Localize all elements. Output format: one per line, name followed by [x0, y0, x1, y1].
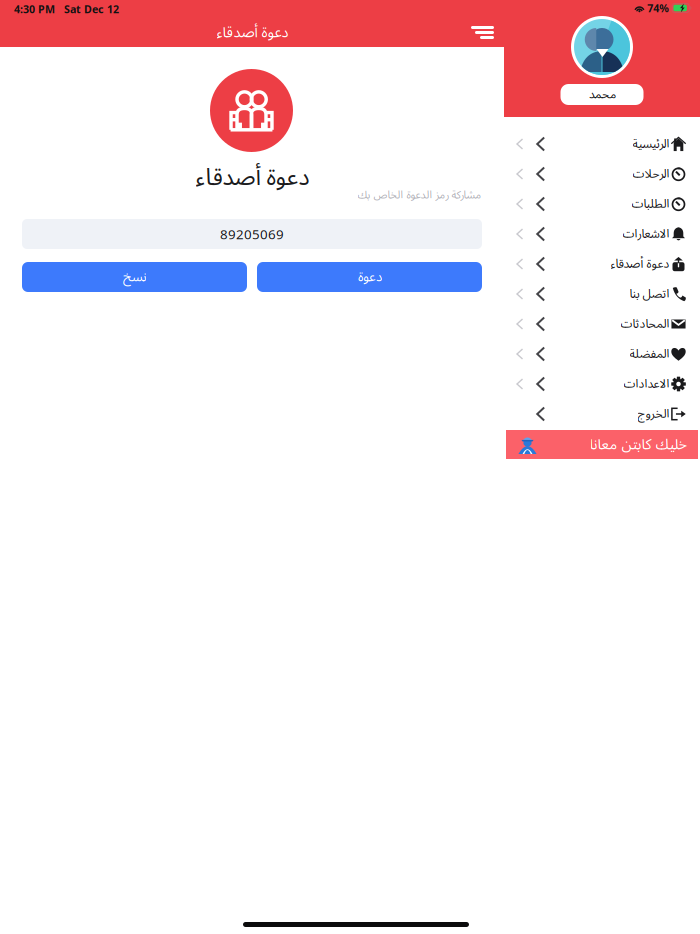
staticText: دعوة أصدقاء — [610, 251, 669, 277]
staticText: الاشعارات — [622, 221, 669, 247]
button[interactable]: الرئيسية — [504, 129, 700, 159]
staticText: دعوة — [357, 263, 381, 291]
staticText: المحادثات — [620, 311, 669, 337]
staticText: الاعدادات — [623, 371, 669, 397]
staticText: الرئيسية — [632, 131, 669, 157]
staticText: نسخ — [122, 263, 146, 291]
staticText: اتصل بنا — [629, 281, 669, 307]
staticText: الخروج — [637, 401, 669, 427]
button[interactable]: نسخ — [22, 262, 247, 292]
staticText: محمد — [588, 82, 615, 107]
button[interactable]: الرحلات — [504, 159, 700, 189]
button[interactable]: المحادثات — [504, 309, 700, 339]
button[interactable]: الطلبات — [504, 189, 700, 219]
staticText: خليك كابتن معانا — [589, 429, 687, 460]
button[interactable]: المفضلة — [504, 339, 700, 369]
staticText: المفضلة — [629, 341, 669, 367]
staticText: الطلبات — [631, 191, 669, 217]
button[interactable]: الخروج — [504, 399, 700, 429]
staticText: 74% — [647, 1, 669, 15]
button[interactable]: الاعدادات — [504, 369, 700, 399]
button[interactable]: دعوة — [257, 262, 482, 292]
button[interactable]: اتصل بنا — [504, 279, 700, 309]
button[interactable]: الاشعارات — [504, 219, 700, 249]
staticText: دعوة أصدقاء — [195, 153, 309, 202]
staticText: مشاركة رمز الدعوة الخاص بك — [357, 184, 481, 206]
button[interactable]: خليك كابتن معانا — [506, 430, 698, 459]
button[interactable]: محمد — [560, 84, 643, 105]
staticText: دعوة أصدقاء — [216, 17, 288, 48]
staticText: 4:30 PM Sat Dec 12 — [14, 2, 119, 16]
button[interactable]: Menu — [464, 19, 501, 46]
staticText: الرحلات — [632, 161, 669, 187]
button[interactable]: دعوة أصدقاء — [504, 249, 700, 279]
staticText: 89205069 — [220, 225, 284, 243]
